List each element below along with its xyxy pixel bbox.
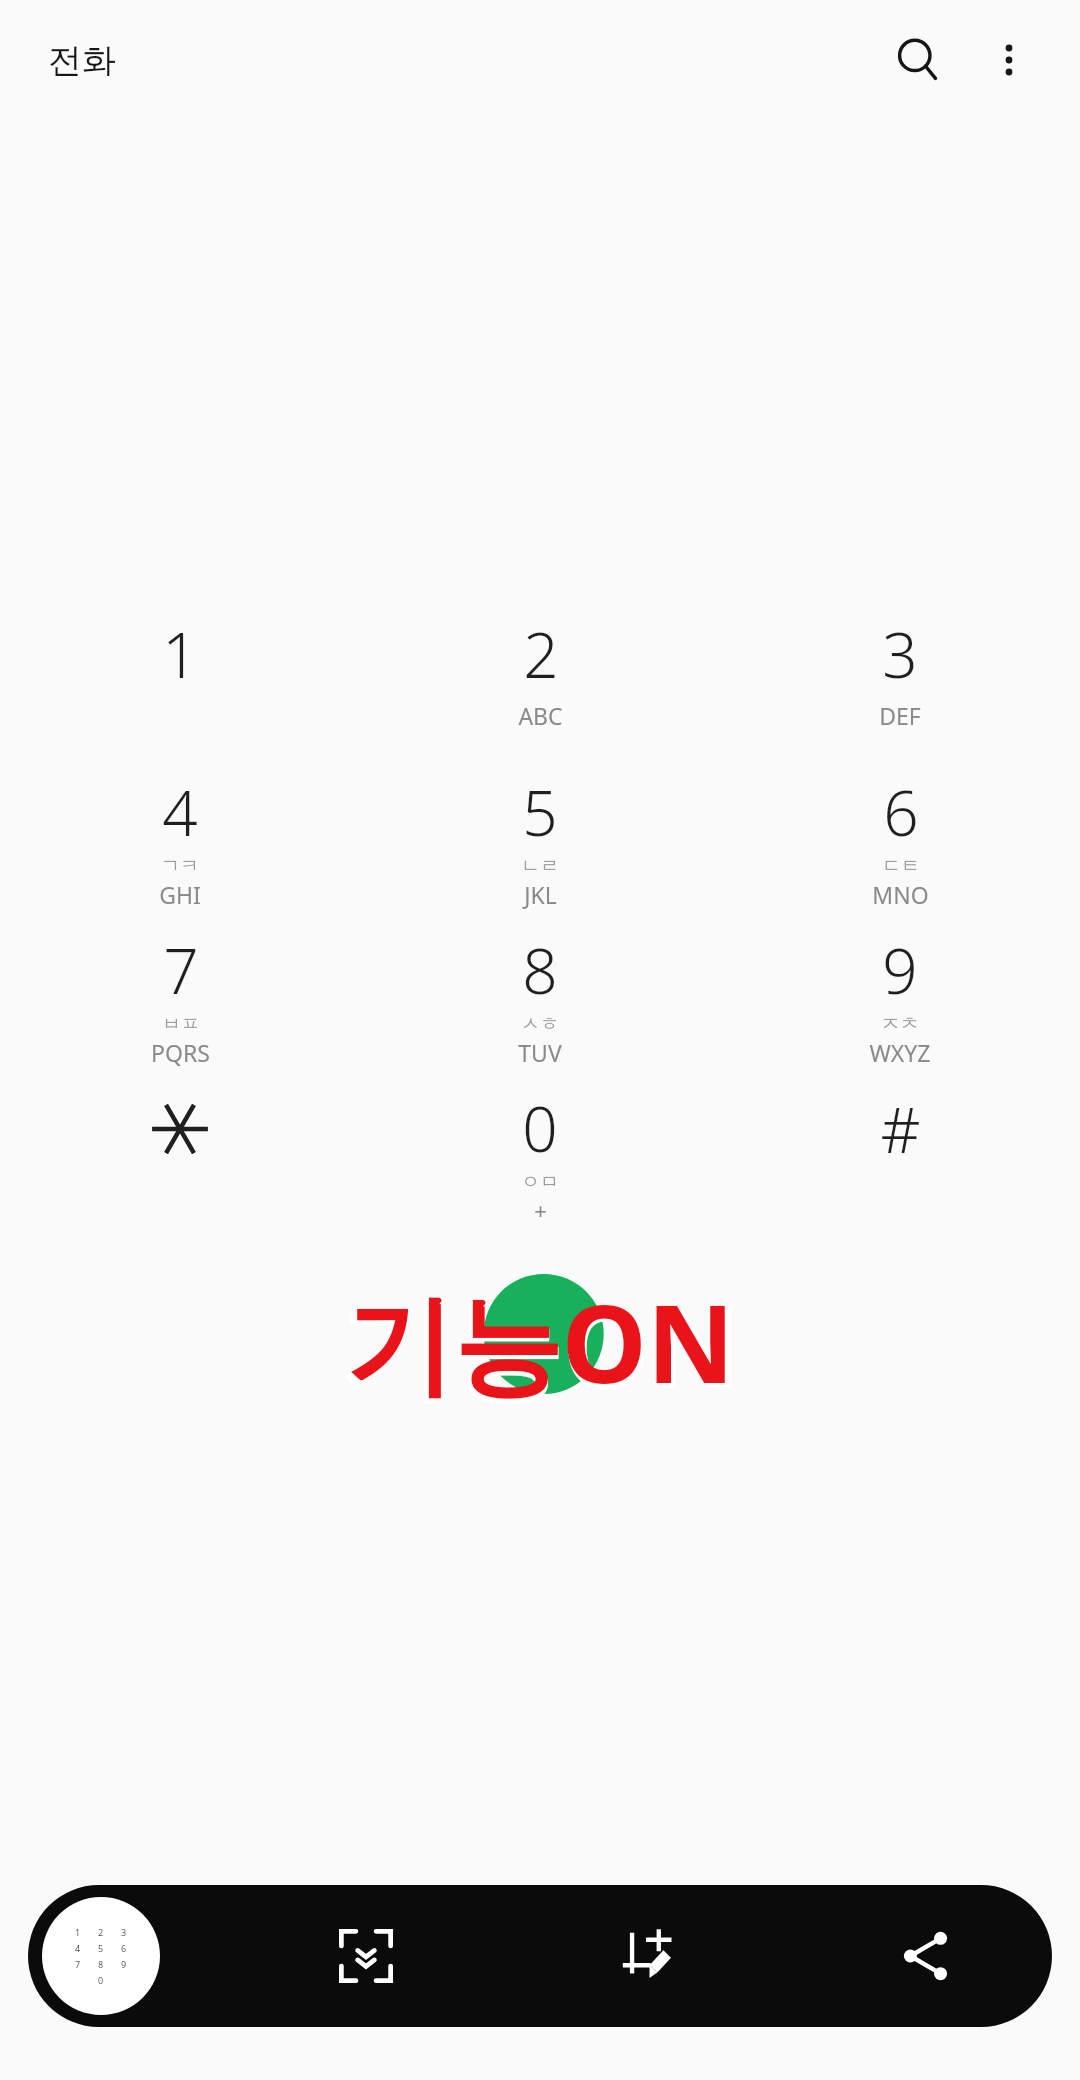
staticText: TUV [518, 1037, 562, 1068]
staticText: # [880, 1087, 921, 1171]
staticText: JKL [524, 879, 557, 910]
staticText: 9 [121, 1958, 127, 1970]
staticText: 2 [523, 612, 559, 694]
staticText: GHI [159, 879, 201, 910]
button[interactable]: 8 [360, 928, 720, 1086]
button[interactable]: 4 [0, 770, 360, 928]
button[interactable]: 0 [360, 1086, 720, 1236]
staticText: ㅇㅁ [521, 1170, 559, 1194]
staticText: ㄴㄹ [521, 854, 559, 878]
button[interactable]: 9 [720, 928, 1080, 1086]
staticText: 7 [163, 928, 199, 1010]
button[interactable]: Search [870, 12, 966, 108]
staticText: WXYZ [869, 1037, 931, 1068]
button[interactable]: 7 [0, 928, 360, 1086]
button[interactable]: 5 [360, 770, 720, 928]
staticText: ㅂㅍ [162, 1012, 200, 1036]
staticText: 기능ON [170, 1268, 910, 1421]
staticText: 6 [121, 1942, 127, 1954]
staticText: 전화 [48, 39, 116, 82]
staticText: ㅅㅎ [521, 1012, 559, 1036]
staticText: PQRS [151, 1037, 210, 1068]
staticText: DEF [879, 700, 921, 731]
staticText: ㅈㅊ [881, 1012, 919, 1036]
staticText: ㄱㅋ [161, 854, 199, 878]
staticText: ABC [518, 700, 563, 731]
staticText: 8 [98, 1958, 104, 1970]
staticText: 5 [98, 1942, 104, 1954]
button[interactable]: Crop and edit [586, 1896, 706, 2016]
staticText: 9 [882, 928, 918, 1010]
button[interactable]: Share [866, 1896, 986, 2016]
button[interactable]: More options [966, 17, 1052, 103]
button[interactable]: 2 [360, 612, 720, 770]
staticText: 기능ON [170, 1268, 910, 1416]
staticText: 0 [98, 1974, 104, 1986]
staticText: 5 [522, 770, 558, 852]
staticText: 4 [75, 1942, 81, 1954]
staticText: 0 [522, 1086, 558, 1168]
staticText: 8 [522, 928, 558, 1010]
staticText: 1 [75, 1926, 81, 1938]
staticText: 1 [162, 612, 198, 694]
staticText: 7 [75, 1958, 81, 1970]
button[interactable]: Scroll capture [306, 1896, 426, 2016]
staticText: 6 [883, 770, 919, 852]
button[interactable] [0, 1086, 360, 1236]
button[interactable]: 6 [720, 770, 1080, 928]
button[interactable]: Screenshot preview [42, 1897, 160, 2015]
button[interactable]: 3 [720, 612, 1080, 770]
staticText: ㄷㅌ [882, 854, 920, 878]
staticText: MNO [872, 879, 929, 910]
staticText: 2 [98, 1926, 104, 1938]
staticText: 3 [121, 1926, 127, 1938]
button[interactable]: 1 [0, 612, 360, 770]
button[interactable]: # [720, 1086, 1080, 1236]
staticText: 4 [162, 770, 198, 852]
staticText: 3 [882, 612, 918, 694]
staticText: + [534, 1195, 547, 1225]
